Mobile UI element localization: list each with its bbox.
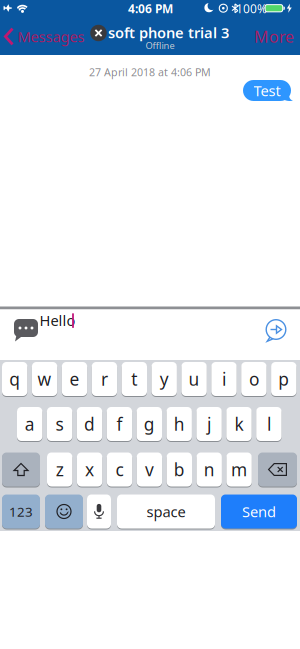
staticText: c: [115, 458, 123, 481]
staticText: f: [116, 412, 122, 435]
button[interactable]: q: [2, 361, 27, 397]
staticText: g: [144, 412, 155, 435]
button[interactable]: f: [107, 406, 132, 442]
button[interactable]: [45, 493, 83, 529]
button[interactable]: w: [32, 361, 57, 397]
button[interactable]: v: [137, 451, 162, 487]
staticText: j: [207, 412, 211, 435]
staticText: h: [174, 412, 185, 435]
button[interactable]: More: [250, 18, 298, 55]
staticText: 4:06 PM: [128, 1, 173, 16]
staticText: t: [131, 367, 137, 390]
button[interactable]: x: [77, 451, 102, 487]
button[interactable]: i: [211, 361, 237, 397]
staticText: p: [278, 367, 289, 390]
staticText: Test: [253, 81, 280, 100]
staticText: m: [231, 458, 247, 481]
staticText: o: [249, 367, 259, 390]
staticText: Offline: [145, 39, 174, 52]
staticText: s: [56, 412, 64, 435]
button[interactable]: [14, 319, 38, 343]
button[interactable]: space: [117, 493, 215, 529]
staticText: 100%: [236, 1, 267, 16]
button[interactable]: n: [196, 451, 222, 487]
button[interactable]: h: [166, 406, 192, 442]
button[interactable]: o: [241, 361, 267, 397]
staticText: n: [204, 458, 215, 481]
button[interactable]: p: [271, 361, 296, 397]
button[interactable]: c: [107, 451, 132, 487]
button[interactable]: t: [122, 361, 147, 397]
staticText: k: [234, 412, 243, 435]
staticText: More: [254, 26, 294, 47]
button[interactable]: [264, 319, 288, 343]
staticText: l: [267, 412, 271, 435]
button[interactable]: soft phone trial 3: [90, 18, 230, 55]
button[interactable]: [2, 451, 40, 487]
button[interactable]: z: [47, 451, 72, 487]
button[interactable]: l: [256, 406, 282, 442]
staticText: b: [174, 458, 185, 481]
button[interactable]: [87, 493, 111, 529]
button[interactable]: d: [77, 406, 102, 442]
button[interactable]: e: [62, 361, 87, 397]
button[interactable]: m: [226, 451, 252, 487]
button[interactable]: Messages: [0, 18, 92, 55]
staticText: v: [145, 458, 154, 481]
staticText: 123: [9, 503, 33, 520]
staticText: w: [38, 367, 52, 390]
button[interactable]: g: [137, 406, 162, 442]
staticText: a: [25, 412, 35, 435]
staticText: Send: [242, 502, 276, 521]
button[interactable]: a: [17, 406, 42, 442]
button[interactable]: b: [167, 451, 192, 487]
staticText: r: [101, 367, 108, 390]
button[interactable]: r: [92, 361, 117, 397]
staticText: 27 April 2018 at 4:06 PM: [89, 65, 211, 79]
staticText: z: [56, 458, 64, 481]
staticText: soft phone trial 3: [108, 23, 229, 42]
button[interactable]: s: [47, 406, 72, 442]
button[interactable]: Send: [221, 493, 297, 529]
button[interactable]: u: [181, 361, 207, 397]
staticText: Messages: [17, 27, 84, 46]
staticText: u: [189, 367, 200, 390]
button[interactable]: 123: [2, 493, 40, 529]
button[interactable]: k: [226, 406, 252, 442]
button[interactable]: j: [196, 406, 222, 442]
staticText: i: [222, 367, 226, 390]
staticText: d: [84, 412, 95, 435]
button[interactable]: y: [151, 361, 177, 397]
button[interactable]: Test: [243, 80, 291, 101]
staticText: Hello: [39, 311, 75, 330]
staticText: y: [160, 367, 169, 390]
staticText: space: [146, 502, 185, 521]
staticText: q: [9, 367, 20, 390]
staticText: e: [69, 367, 79, 390]
button[interactable]: [258, 451, 297, 487]
staticText: x: [85, 458, 94, 481]
